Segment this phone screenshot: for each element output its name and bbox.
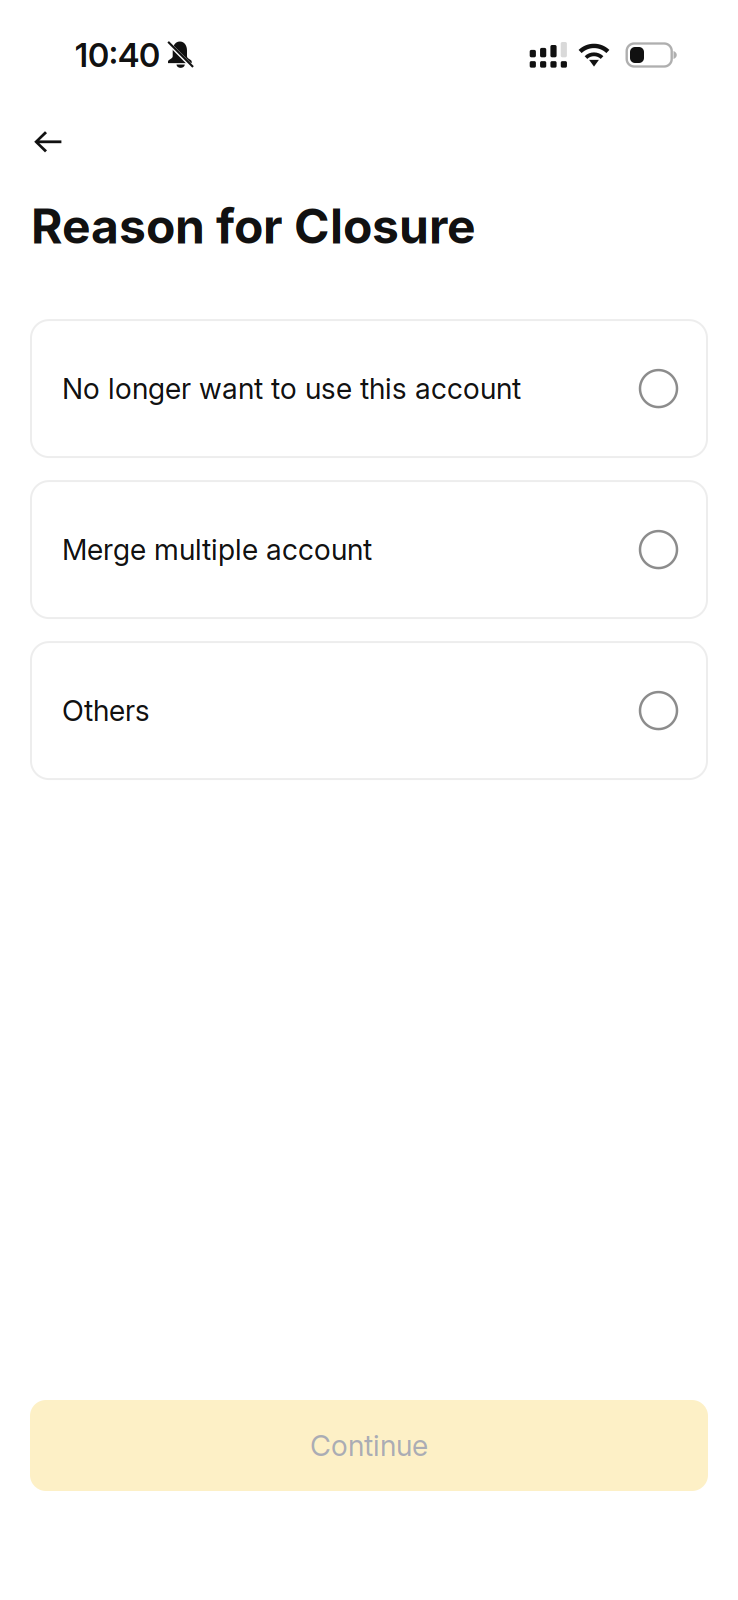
staticText: No longer want to use this account: [62, 371, 521, 406]
button[interactable]: Merge multiple account: [31, 481, 707, 618]
staticText: Merge multiple account: [62, 532, 372, 567]
staticText: 10:40: [75, 35, 160, 75]
staticText: Reason for Closure: [31, 197, 476, 255]
button[interactable]: Others: [31, 642, 707, 779]
button[interactable]: Continue: [30, 1400, 708, 1491]
staticText: Continue: [310, 1428, 428, 1463]
button[interactable]: Back: [0, 120, 84, 164]
staticText: Others: [62, 693, 150, 728]
button[interactable]: No longer want to use this account: [31, 320, 707, 457]
